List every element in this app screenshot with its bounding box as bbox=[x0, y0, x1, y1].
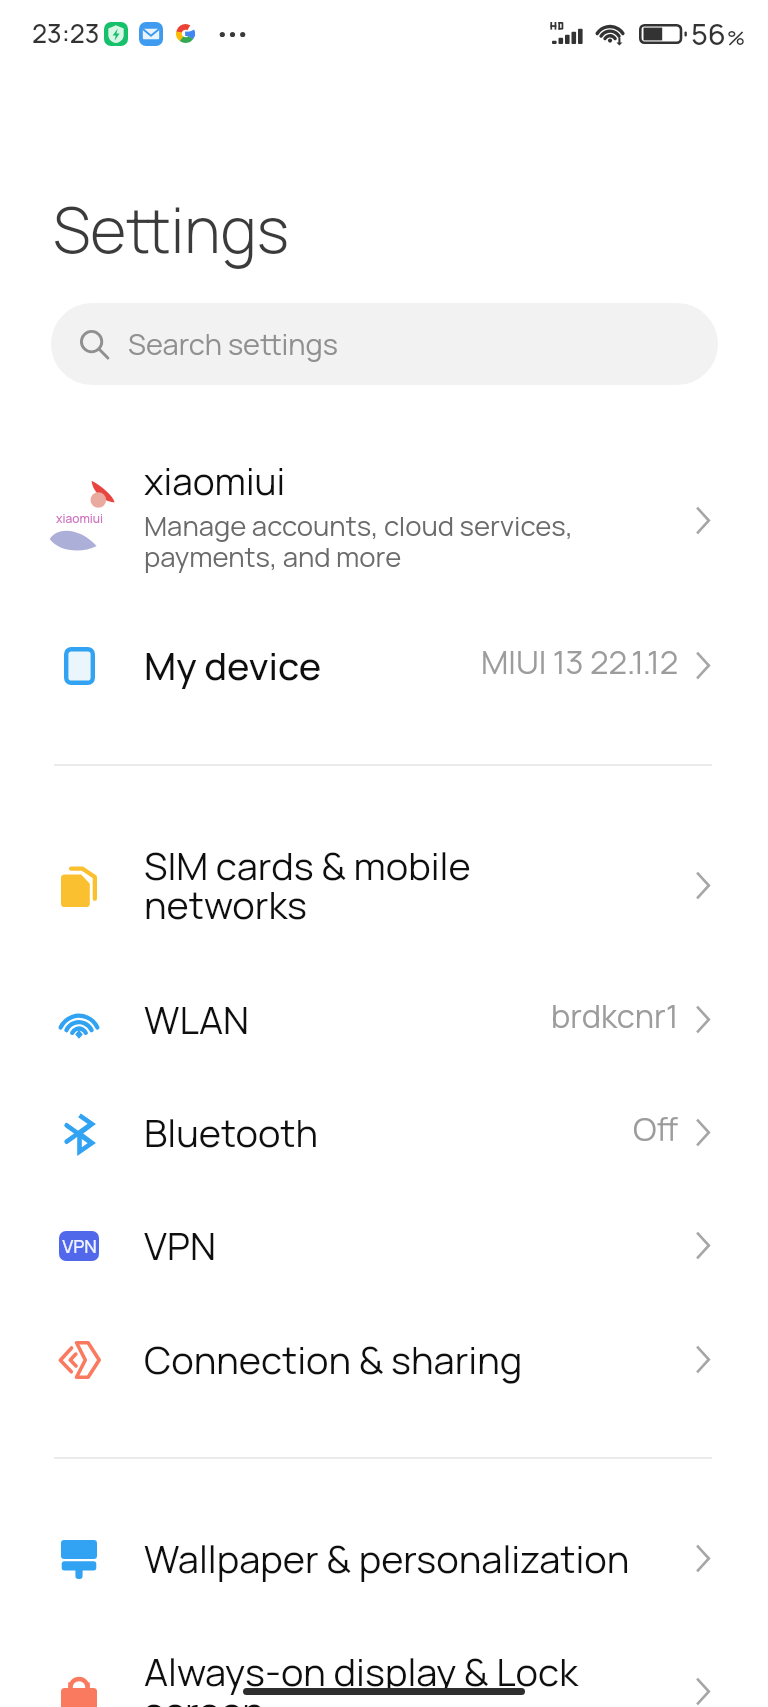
staticText: MIUI 13 22.1.12 bbox=[481, 639, 679, 683]
staticText: xiaomiui bbox=[56, 510, 103, 526]
button[interactable]: Always-on display & Lock screen bbox=[0, 1615, 768, 1707]
button[interactable]: SIM cards & mobile networks bbox=[0, 809, 768, 962]
button[interactable]: Connection & sharing bbox=[0, 1303, 768, 1416]
button[interactable]: My device bbox=[0, 609, 768, 722]
staticText: 56 bbox=[691, 14, 726, 54]
staticText: 23:23 bbox=[32, 15, 100, 51]
staticText: Connection & sharing bbox=[144, 1333, 523, 1385]
staticText: Search settings bbox=[128, 324, 338, 364]
staticText: Wallpaper & personalization bbox=[144, 1532, 630, 1584]
staticText: WLAN bbox=[144, 993, 250, 1045]
staticText: xiaomiui bbox=[144, 456, 286, 507]
button[interactable]: VPN bbox=[0, 1189, 768, 1302]
staticText: Settings bbox=[53, 187, 289, 272]
button[interactable]: WLAN bbox=[0, 963, 768, 1076]
button[interactable]: Search settings bbox=[51, 303, 718, 385]
staticText: brdkcnr1 bbox=[551, 993, 679, 1037]
staticText: VPN bbox=[62, 1234, 97, 1259]
staticText: % bbox=[727, 24, 746, 51]
staticText: Bluetooth bbox=[144, 1106, 319, 1158]
staticText: My device bbox=[144, 639, 322, 691]
button[interactable]: Wallpaper & personalization bbox=[0, 1502, 768, 1615]
staticText: Off bbox=[633, 1106, 679, 1150]
button[interactable]: Bluetooth bbox=[0, 1076, 768, 1189]
staticText: SIM cards & mobile networks bbox=[144, 839, 471, 931]
staticText: Manage accounts, cloud services, payment… bbox=[144, 507, 574, 575]
staticText: Always-on display & Lock screen bbox=[144, 1645, 578, 1707]
button[interactable]: xiaomiui bbox=[0, 433, 768, 608]
staticText: VPN bbox=[144, 1219, 216, 1271]
